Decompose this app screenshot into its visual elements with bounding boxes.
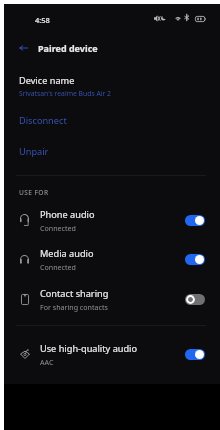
button[interactable]: On	[185, 349, 205, 360]
button[interactable]: Use high-quality audio	[4, 339, 220, 369]
button[interactable]: Contact sharing	[4, 284, 220, 314]
staticText: Unpair	[19, 145, 49, 158]
button[interactable]: On	[185, 254, 205, 265]
staticText: For sharing contacts	[40, 302, 108, 312]
staticText: Disconnect	[19, 114, 67, 127]
staticText: Use high-quality audio	[40, 342, 138, 355]
staticText: 4:58	[35, 15, 50, 25]
button[interactable]: Off	[185, 294, 205, 305]
button[interactable]: Disconnect	[4, 106, 220, 134]
button[interactable]: On	[185, 215, 205, 226]
staticText: Device name	[19, 74, 75, 87]
staticText: Phone audio	[40, 208, 95, 221]
staticText: Connected	[40, 223, 76, 233]
button[interactable]: Device name	[4, 72, 220, 102]
staticText: USE FOR	[19, 188, 49, 197]
button[interactable]: Back	[11, 36, 35, 60]
button[interactable]: Phone audio	[4, 205, 220, 235]
staticText: Contact sharing	[40, 287, 109, 300]
button[interactable]: Media audio	[4, 244, 220, 274]
staticText: Srivatsan's realme Buds Air 2	[19, 89, 111, 98]
staticText: Connected	[40, 262, 76, 272]
staticText: Paired device	[38, 42, 98, 54]
staticText: Media audio	[40, 247, 94, 260]
button[interactable]: Unpair	[4, 137, 220, 165]
staticText: AAC	[40, 357, 54, 367]
